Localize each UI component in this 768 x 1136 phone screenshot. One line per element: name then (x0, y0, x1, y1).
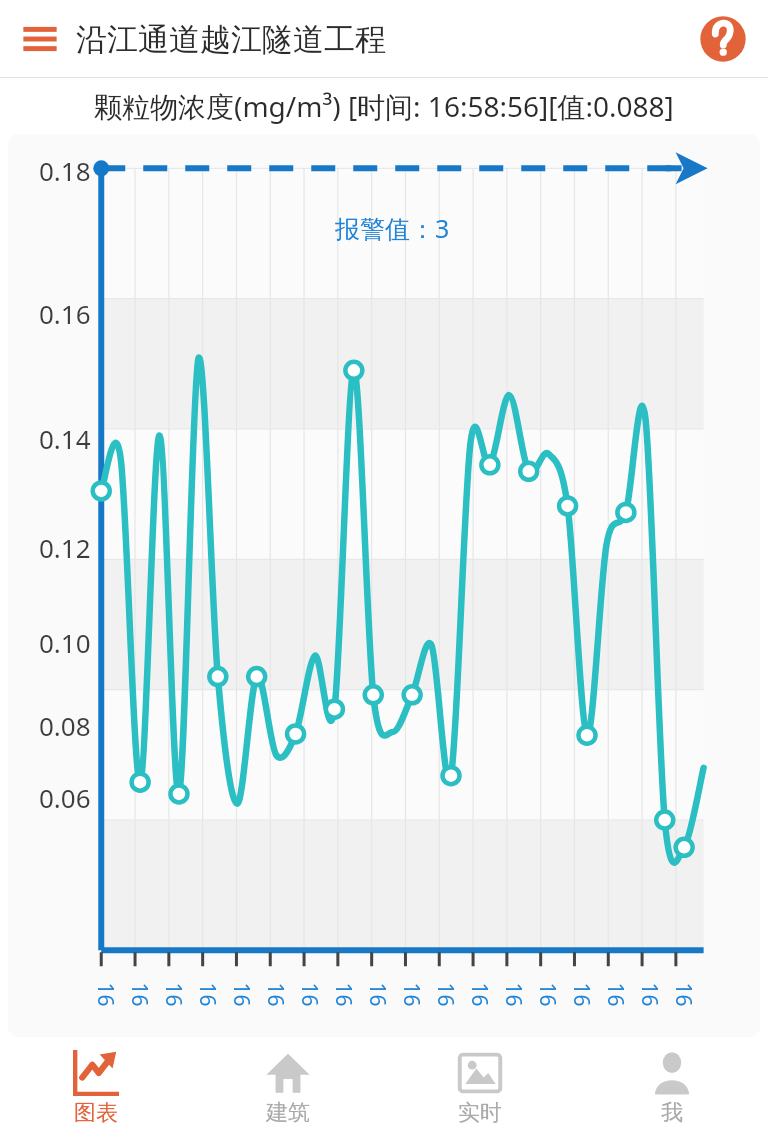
staticText: 16:51:5 (362, 980, 391, 1008)
button[interactable]: 实时 (384, 1040, 576, 1136)
staticText: 16:53:5 (464, 980, 493, 1008)
staticText: 16:47:1 (124, 980, 153, 1008)
staticText: 16:50:3 (294, 980, 323, 1008)
staticText: 建筑 (266, 1099, 310, 1127)
staticText: 16:55:1 (532, 980, 561, 1008)
staticText: 0.08 (39, 708, 91, 743)
staticText: 16:54:3 (498, 980, 527, 1008)
staticText: 16:56:3 (600, 980, 629, 1008)
staticText: 16:51:1 (328, 980, 357, 1008)
staticText: 颗粒物浓度(mg/m³) [时间: 16:58:56][值:0.088] (94, 87, 674, 125)
staticText: 16:49:5 (260, 980, 289, 1008)
staticText: 0.14 (39, 421, 91, 456)
staticText: 0.06 (39, 780, 91, 815)
staticText: 0.10 (39, 625, 91, 660)
staticText: 沿江通道越江隧道工程 (76, 20, 386, 59)
staticText: 16:48:3 (192, 980, 221, 1008)
staticText: 16:57:1 (634, 980, 663, 1008)
staticText: 16:47:5 (158, 980, 187, 1008)
staticText: 16:57:5 (668, 980, 697, 1008)
staticText: 16:46:3 (90, 980, 119, 1008)
button[interactable]: 我 (576, 1040, 768, 1136)
staticText: 报警值：3 (335, 211, 450, 245)
staticText: 我 (661, 1099, 683, 1127)
staticText: 图表 (74, 1099, 118, 1127)
button[interactable]: Menu (14, 13, 66, 65)
staticText: 16:53:1 (430, 980, 459, 1008)
button[interactable]: 建筑 (192, 1040, 384, 1136)
staticText: 实时 (458, 1099, 502, 1127)
staticText: 0.18 (39, 153, 91, 188)
staticText: 16:55:5 (566, 980, 595, 1008)
staticText: 0.16 (39, 296, 91, 331)
button[interactable]: 图表 (0, 1040, 192, 1136)
staticText: 0.12 (39, 530, 91, 565)
button[interactable]: Help (696, 12, 750, 66)
staticText: 16:49:1 (226, 980, 255, 1008)
staticText: 16:52:3 (396, 980, 425, 1008)
